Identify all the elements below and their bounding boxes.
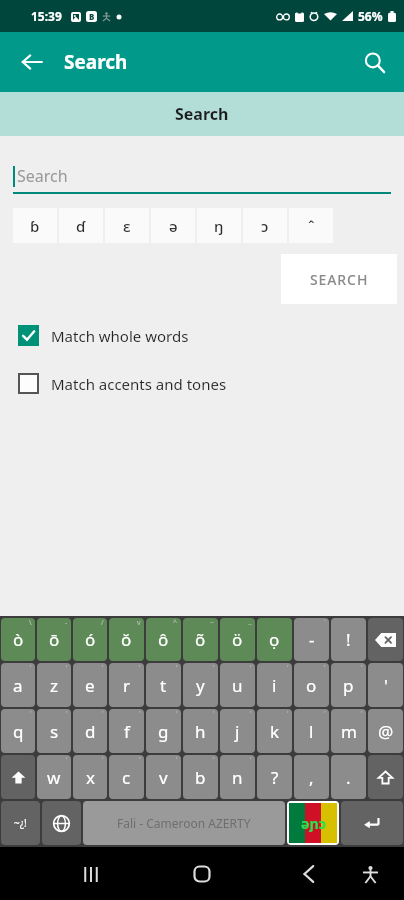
button[interactable]: ' — [37, 709, 71, 753]
staticText: x — [86, 766, 95, 789]
button[interactable]: ' — [146, 663, 181, 707]
button[interactable]: Accessibility — [350, 854, 390, 894]
button[interactable]: ɛ — [105, 208, 149, 243]
staticText: õ — [195, 628, 206, 651]
button[interactable]: \ — [1, 618, 35, 661]
button[interactable]: Search — [0, 92, 404, 136]
staticText: ˆ — [308, 216, 315, 236]
staticText: SEARCH — [310, 270, 369, 289]
button[interactable]: Shift — [368, 755, 403, 799]
button[interactable]: , — [294, 755, 329, 799]
button[interactable]: Match accents and tones — [18, 373, 392, 394]
staticText: s — [50, 720, 59, 743]
button[interactable]: ' — [1, 663, 35, 707]
button[interactable]: ' — [331, 709, 366, 753]
staticText: 56% — [358, 8, 383, 24]
button[interactable]: @ — [368, 709, 403, 753]
button[interactable]: ' — [37, 755, 71, 799]
button[interactable]: ' — [73, 663, 107, 707]
staticText: ' — [250, 709, 252, 719]
staticText: B — [89, 11, 95, 22]
staticText: ' — [176, 755, 178, 765]
button[interactable]: ` — [294, 618, 329, 661]
staticText: o — [306, 674, 317, 697]
staticText: Search — [17, 165, 68, 187]
staticText: q — [13, 720, 24, 743]
staticText: l — [309, 720, 314, 743]
button[interactable]: Back — [286, 851, 332, 897]
button[interactable]: Symbols — [1, 801, 40, 845]
staticText: ŋ — [214, 216, 224, 236]
button[interactable]: ɔ — [243, 208, 287, 243]
staticText: ' — [213, 709, 215, 719]
button[interactable]: ' — [109, 663, 144, 707]
button[interactable]: Fali - Cameroon AZERTY — [83, 801, 285, 845]
button[interactable]: Back — [10, 40, 54, 84]
staticText: v — [159, 766, 168, 789]
button[interactable]: ' — [183, 663, 218, 707]
staticText: t — [160, 674, 167, 697]
button[interactable]: Shift — [1, 755, 35, 799]
staticText: ' — [30, 709, 32, 719]
button[interactable]: .. — [220, 618, 255, 661]
staticText: e — [85, 674, 95, 697]
button[interactable]: . — [331, 755, 366, 799]
staticText: / — [101, 618, 104, 628]
button[interactable]: ! — [331, 618, 366, 661]
button[interactable]: ˆ — [289, 208, 333, 243]
staticText: ' — [361, 663, 363, 673]
button[interactable]: ' — [183, 755, 218, 799]
button[interactable]: Delete — [368, 618, 403, 661]
button[interactable]: Fali keyboard — [289, 803, 337, 843]
button[interactable]: ' — [146, 755, 181, 799]
staticText: ŏ — [121, 628, 132, 651]
staticText: i — [272, 674, 277, 697]
button[interactable]: / — [73, 618, 107, 661]
staticText: Search — [64, 49, 128, 75]
button[interactable]: Search — [352, 40, 396, 84]
staticText: ɔ — [261, 216, 269, 236]
button[interactable]: Match whole words — [18, 325, 392, 346]
button[interactable]: ɓ — [13, 208, 57, 243]
staticText: v — [137, 618, 141, 628]
staticText: z — [50, 674, 58, 697]
staticText: n — [232, 766, 243, 789]
button[interactable]: ' — [368, 663, 403, 707]
button[interactable]: ~ — [183, 618, 218, 661]
button[interactable]: ' — [257, 663, 292, 707]
button[interactable]: ' — [37, 663, 71, 707]
button[interactable]: ' — [220, 709, 255, 753]
button[interactable]: SEARCH — [281, 254, 397, 304]
staticText: y — [196, 674, 205, 697]
button[interactable]: ' — [331, 663, 366, 707]
button[interactable]: ŋ — [197, 208, 241, 243]
staticText: j — [235, 720, 240, 743]
button[interactable]: Enter — [341, 801, 403, 845]
button[interactable]: Search — [13, 157, 391, 194]
button[interactable]: ? — [257, 755, 292, 799]
button[interactable]: ' — [257, 709, 292, 753]
staticText: ' — [102, 663, 104, 673]
button[interactable]: ' — [220, 755, 255, 799]
button[interactable]: ' — [73, 709, 107, 753]
staticText: a — [13, 674, 23, 697]
button[interactable]: ɗ — [59, 208, 103, 243]
button[interactable]: ' — [294, 709, 329, 753]
button[interactable]: ' — [294, 663, 329, 707]
button[interactable]: ' — [1, 709, 35, 753]
button[interactable]: Change language — [42, 801, 81, 845]
staticText: ' — [30, 663, 32, 673]
button[interactable]: ' — [146, 709, 181, 753]
button[interactable]: v — [109, 618, 144, 661]
button[interactable]: ' — [220, 663, 255, 707]
button[interactable]: ' — [109, 709, 144, 753]
button[interactable]: ọ — [257, 618, 292, 661]
button[interactable]: ' — [183, 709, 218, 753]
button[interactable]: - — [37, 618, 71, 661]
button[interactable]: ' — [109, 755, 144, 799]
button[interactable]: ^ — [146, 618, 181, 661]
button[interactable]: Home — [179, 851, 225, 897]
button[interactable]: ə — [151, 208, 195, 243]
button[interactable]: Recents — [68, 851, 114, 897]
button[interactable]: ' — [73, 755, 107, 799]
